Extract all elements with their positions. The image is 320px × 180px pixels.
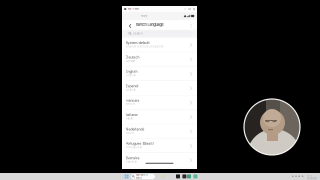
button[interactable]: Taskbar app: [187, 174, 191, 178]
staticText: Turkce: [126, 170, 137, 174]
button[interactable]: Francais: [122, 95, 197, 110]
staticText: English: [126, 74, 137, 77]
staticText: Espanol: [126, 84, 139, 88]
staticText: English: [126, 69, 138, 74]
staticText: German: [126, 59, 136, 62]
staticText: Turkish: [126, 174, 136, 178]
button[interactable]: Taskbar app: [193, 174, 197, 178]
button[interactable]: Turkce: [122, 167, 197, 180]
button[interactable]: Taskbar app: [161, 174, 165, 178]
button[interactable]: Start: [123, 173, 130, 180]
staticText: System default: [126, 41, 150, 45]
button[interactable]: More options: [188, 22, 194, 30]
staticText: 05/03/2021: [307, 177, 317, 180]
staticText: Nederlands: [126, 127, 145, 131]
button[interactable]: Svenska: [122, 153, 197, 167]
staticText: Switch Language: [136, 22, 164, 27]
staticText: Type here to search: [136, 174, 148, 179]
staticText: Deutsch: [126, 55, 140, 59]
staticText: 11:06: [140, 14, 147, 17]
staticText: English (United Kingdom): [126, 45, 164, 48]
staticText: Italian: [126, 117, 134, 120]
button[interactable]: Italiano: [122, 110, 197, 124]
staticText: Portugues (Brasil): [126, 141, 154, 146]
staticText: 21:17: [307, 174, 312, 177]
button[interactable]: Taskbar app: [176, 174, 180, 178]
staticText: Francais: [126, 98, 140, 102]
button[interactable]: Search: [131, 174, 155, 179]
staticText: Portuguese: [126, 146, 143, 149]
button[interactable]: Deutsch: [122, 52, 197, 67]
button[interactable]: Back: [127, 22, 134, 30]
staticText: Swedish: [126, 160, 138, 163]
button[interactable]: Portugues (Brasil): [122, 139, 197, 153]
staticText: Your Phone: [128, 7, 139, 10]
button[interactable]: Nederlands: [122, 124, 197, 139]
button[interactable]: English: [122, 67, 197, 81]
staticText: Italiano: [126, 113, 138, 117]
staticText: Svenska: [126, 156, 140, 160]
staticText: Spanish: [126, 88, 137, 91]
button[interactable]: Window controls: [184, 8, 195, 10]
button[interactable]: Taskbar app: [182, 174, 186, 178]
button[interactable]: Espanol: [122, 81, 197, 95]
staticText: Search: [133, 32, 143, 35]
button[interactable]: System default: [122, 38, 197, 52]
staticText: French: [126, 102, 136, 106]
staticText: Dutch: [126, 131, 135, 134]
